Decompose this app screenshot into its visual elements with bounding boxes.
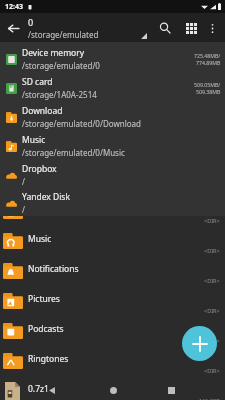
staticText: Download xyxy=(22,105,63,117)
staticText: SD card xyxy=(22,76,53,88)
staticText: Ringtones xyxy=(28,353,69,365)
button[interactable]: Music xyxy=(0,131,225,160)
button[interactable]: Dropbox xyxy=(0,160,225,189)
button[interactable]: Back xyxy=(43,381,61,399)
staticText: /storage/emulated/0/Download xyxy=(22,118,141,129)
button[interactable]: Ringtones xyxy=(0,346,225,376)
staticText: Music xyxy=(22,134,46,146)
staticText: 161.00B xyxy=(199,397,220,400)
button[interactable]: Podcasts xyxy=(0,316,225,346)
button[interactable]: Music xyxy=(0,226,225,256)
button[interactable]: SD card xyxy=(0,73,225,102)
staticText: Dropbox xyxy=(22,163,57,175)
staticText: /storage/emulated/0 xyxy=(22,60,100,71)
staticText: 509.38MB xyxy=(196,88,221,95)
staticText: /storage/emulated xyxy=(28,29,99,40)
button[interactable]: More options xyxy=(199,15,225,41)
button[interactable]: Pictures xyxy=(0,286,225,316)
staticText: 0.7z1 xyxy=(28,383,49,395)
button[interactable]: Back xyxy=(0,15,26,41)
staticText: <DIR> xyxy=(204,217,220,224)
button[interactable]: Recents xyxy=(162,381,180,399)
staticText: 12:43 xyxy=(5,2,23,12)
staticText: Pictures xyxy=(28,293,60,305)
staticText: <DIR> xyxy=(204,367,220,374)
staticText: /storage/1A0A-2514 xyxy=(22,89,97,100)
button[interactable]: View mode xyxy=(178,15,204,41)
button[interactable]: Search xyxy=(152,15,178,41)
staticText: / xyxy=(22,204,25,215)
button[interactable]: Movies xyxy=(0,196,225,226)
staticText: 509.05MB/ xyxy=(194,81,221,88)
button[interactable]: Download xyxy=(0,102,225,131)
staticText: Music xyxy=(28,233,52,245)
button[interactable]: Notifications xyxy=(0,256,225,286)
staticText: 774.89MB xyxy=(196,59,221,66)
staticText: Notifications xyxy=(28,263,79,275)
staticText: <DIR> xyxy=(204,307,220,314)
staticText: <DIR> xyxy=(204,247,220,254)
button[interactable]: Yandex Disk xyxy=(0,189,225,216)
staticText: Podcasts xyxy=(28,323,64,335)
staticText: Device memory xyxy=(22,47,85,59)
staticText: Yandex Disk xyxy=(22,191,70,203)
staticText: /storage/emulated/0/Music xyxy=(22,147,125,158)
staticText: 0 xyxy=(28,16,34,28)
staticText: / xyxy=(22,176,25,187)
button[interactable]: Device memory xyxy=(0,44,225,73)
button[interactable]: Home xyxy=(104,381,122,399)
staticText: 725.48MB/ xyxy=(194,52,221,59)
button[interactable]: 0.7z1 xyxy=(0,376,225,400)
button[interactable]: 0 xyxy=(28,16,148,40)
staticText: <DIR> xyxy=(204,277,220,284)
staticText: <DIR> xyxy=(204,337,220,344)
button[interactable]: Add xyxy=(182,326,217,361)
